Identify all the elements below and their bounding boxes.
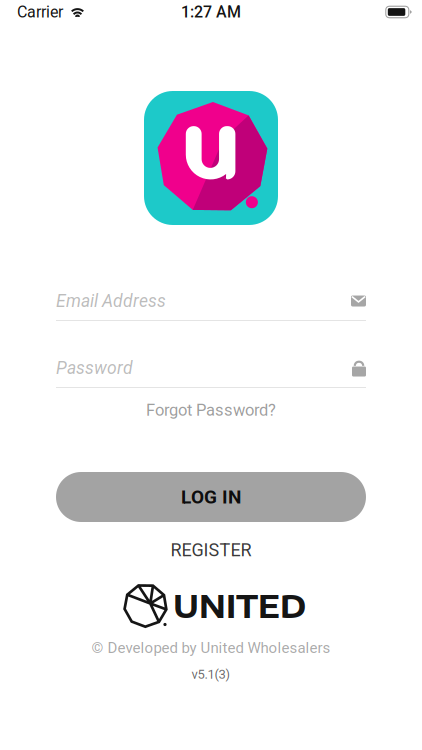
staticText: © Developed by United Wholesalers xyxy=(91,639,330,657)
staticText: Forgot Password? xyxy=(146,400,276,420)
button[interactable]: Forgot Password? xyxy=(56,398,366,422)
button[interactable]: REGISTER xyxy=(56,539,366,561)
staticText: 1:27 AM xyxy=(181,3,241,21)
staticText: LOG IN xyxy=(181,486,241,508)
staticText: Email Address xyxy=(56,291,166,311)
staticText: UNITED xyxy=(173,586,306,625)
staticText: REGISTER xyxy=(170,539,251,561)
staticText: v5.1(3) xyxy=(191,667,230,682)
button[interactable]: LOG IN xyxy=(56,472,366,522)
staticText: Carrier xyxy=(17,3,63,21)
staticText: Password xyxy=(56,358,133,378)
